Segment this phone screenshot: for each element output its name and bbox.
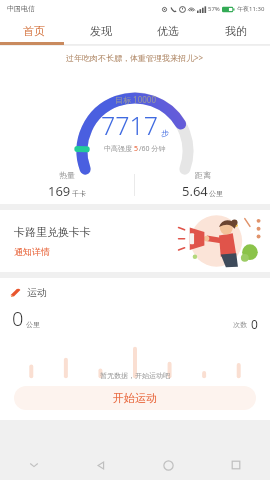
staticText: 卡路里兑换卡卡 — [14, 225, 91, 239]
staticText: 我的 — [225, 24, 247, 38]
staticText: 目标 10000 — [115, 94, 156, 105]
staticText: 公里 — [209, 189, 223, 198]
staticText: 5.64 — [182, 182, 208, 200]
staticText: 热量 — [59, 170, 75, 180]
button[interactable]: 首页 — [0, 17, 67, 45]
staticText: /60 分钟 — [139, 144, 166, 154]
button[interactable]: 优选 — [134, 17, 202, 45]
button[interactable]: 过年吃肉不长膘，体重管理我来招儿>> — [0, 46, 270, 68]
staticText: 中高强度 — [104, 144, 134, 154]
staticText: 169 — [48, 182, 71, 200]
staticText: 过年吃肉不长膘，体重管理我来招儿>> — [66, 52, 204, 63]
button[interactable]: 卡路里兑换卡卡 — [0, 210, 270, 272]
staticText: 暂无数据，开始运动吧 — [100, 371, 170, 380]
button[interactable]: 距离 — [135, 170, 270, 200]
staticText: 步 — [161, 128, 169, 138]
staticText: 首页 — [23, 24, 45, 38]
staticText: 5 — [134, 144, 139, 154]
button[interactable]: Back — [67, 450, 134, 480]
staticText: 公里 — [26, 320, 40, 329]
button[interactable]: 发现 — [67, 17, 134, 45]
staticText: 次数 — [233, 320, 247, 329]
button[interactable]: 热量 — [0, 170, 134, 200]
staticText: 0 — [251, 316, 258, 332]
staticText: 优选 — [157, 24, 179, 38]
staticText: 7717 — [101, 108, 159, 142]
staticText: 发现 — [90, 24, 112, 38]
staticText: 运动 — [27, 286, 47, 299]
button[interactable]: Recent apps — [202, 450, 270, 480]
button[interactable]: Home — [134, 450, 202, 480]
button[interactable]: 开始运动 — [14, 386, 256, 410]
staticText: 午夜11:30 — [237, 5, 265, 13]
staticText: 通知详情 — [14, 246, 50, 257]
staticText: 0 — [12, 305, 24, 332]
staticText: 距离 — [195, 170, 211, 180]
staticText: 中国电信 — [7, 4, 35, 13]
button[interactable]: Hide keyboard — [0, 450, 67, 480]
staticText: 57% — [208, 5, 220, 13]
staticText: 千卡 — [72, 189, 86, 198]
staticText: 开始运动 — [113, 391, 157, 405]
button[interactable]: 我的 — [202, 17, 270, 45]
